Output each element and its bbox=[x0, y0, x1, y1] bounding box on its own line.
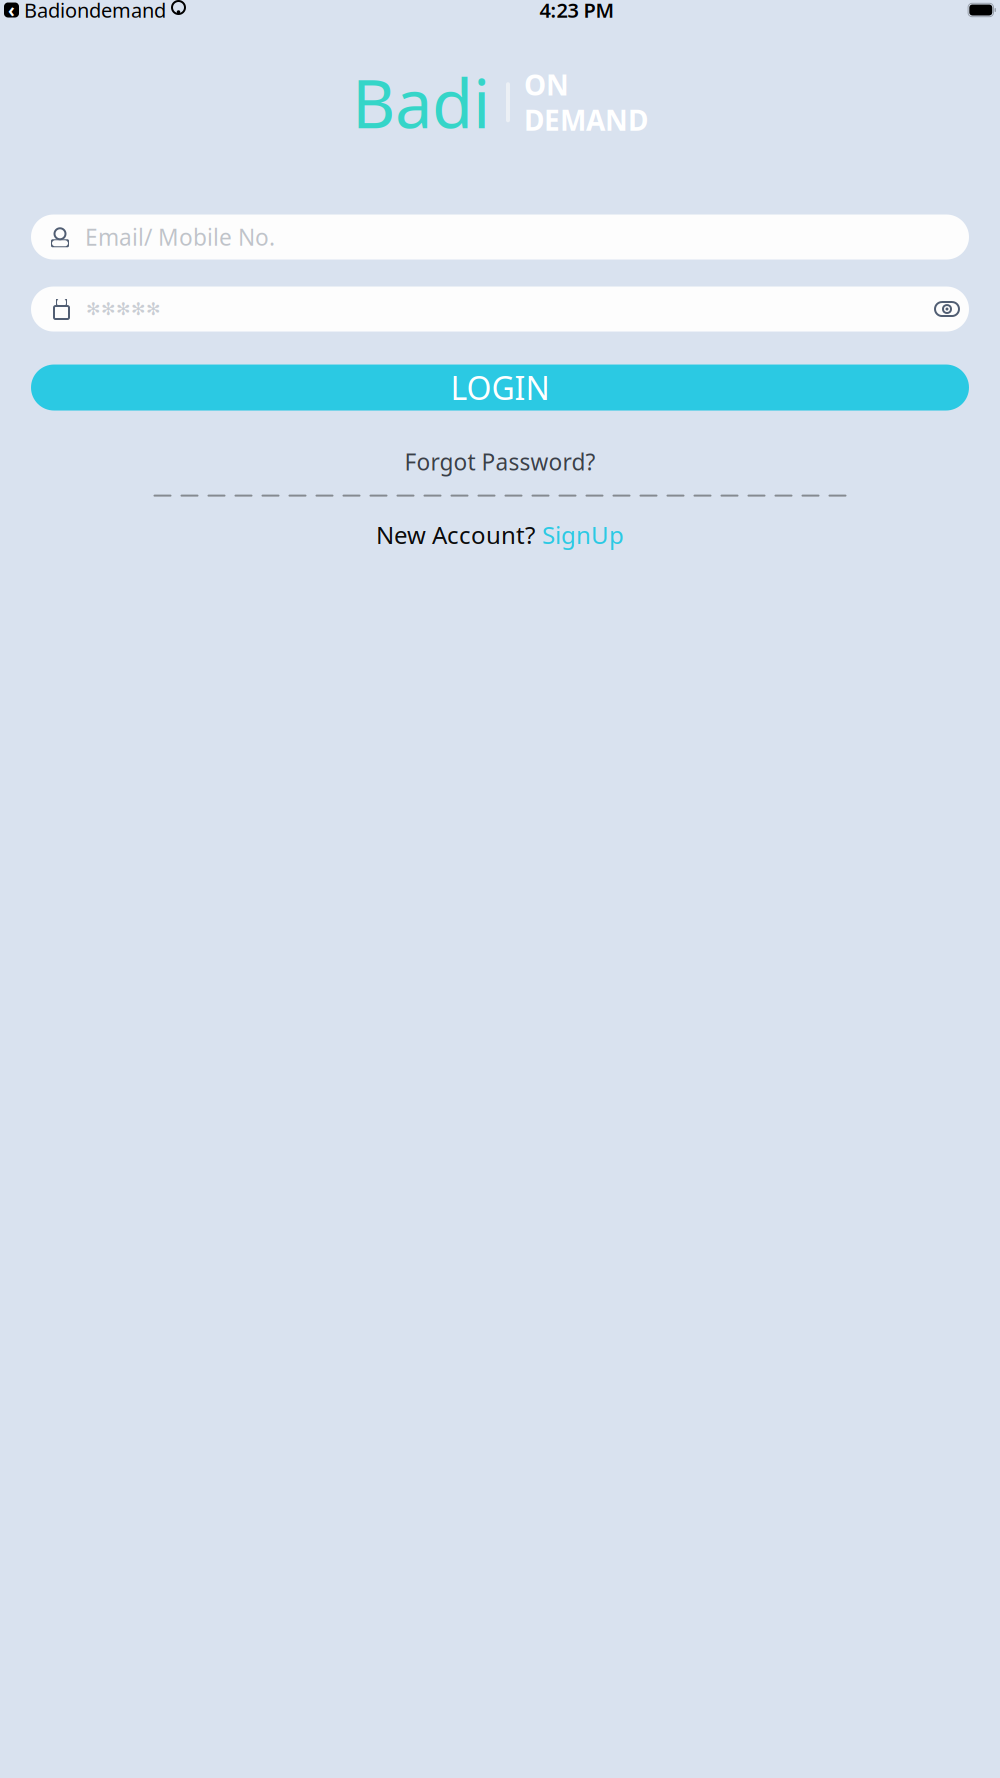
staticText: LOGIN bbox=[450, 366, 549, 409]
staticText: ‹ bbox=[8, 0, 15, 22]
button[interactable]: Show password bbox=[925, 286, 969, 331]
button[interactable]: SignUp bbox=[542, 519, 624, 550]
button[interactable]: LOGIN bbox=[31, 364, 969, 410]
staticText: DEMAND bbox=[524, 101, 648, 138]
button[interactable]: Forgot Password? bbox=[394, 442, 605, 481]
staticText: Badi bbox=[352, 58, 490, 146]
staticText: Forgot Password? bbox=[404, 446, 595, 477]
staticText: ✻✻✻✻✻ bbox=[86, 299, 161, 319]
staticText: Badiondemand bbox=[24, 0, 166, 23]
staticText: ON bbox=[524, 66, 569, 103]
staticText: Email/ Mobile No. bbox=[85, 222, 275, 252]
staticText: SignUp bbox=[542, 519, 624, 550]
staticText: New Account? bbox=[376, 519, 535, 550]
staticText: 4:23 PM bbox=[539, 0, 614, 23]
